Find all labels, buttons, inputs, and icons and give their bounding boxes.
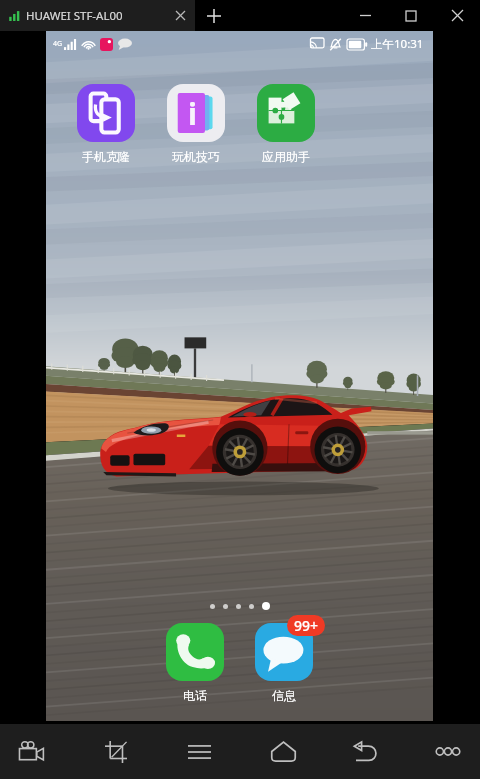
button[interactable]: Back xyxy=(340,724,392,779)
staticText: 玩机技巧 xyxy=(172,149,220,164)
button[interactable]: Close window xyxy=(434,0,480,31)
button[interactable]: New tab xyxy=(195,0,233,31)
button[interactable]: Close tab xyxy=(165,0,195,31)
button[interactable]: HUAWEI STF-AL00 xyxy=(0,0,195,31)
button[interactable]: More options xyxy=(422,724,474,779)
staticText: 应用助手 xyxy=(262,149,310,164)
staticText: 信息 xyxy=(272,688,296,703)
button[interactable]: Record video xyxy=(5,724,57,779)
staticText: 手机克隆 xyxy=(82,149,130,164)
button[interactable]: 99+ xyxy=(255,623,313,703)
button[interactable]: i xyxy=(167,84,225,164)
staticText: 4G xyxy=(53,39,63,49)
button[interactable]: Crop screenshot xyxy=(90,724,142,779)
button[interactable]: 电话 xyxy=(166,623,224,703)
button[interactable]: 手机克隆 xyxy=(77,84,135,164)
staticText: 99+ xyxy=(294,616,319,635)
staticText: 上午10:31 xyxy=(371,36,424,52)
button[interactable]: 应用助手 xyxy=(257,84,315,164)
button[interactable]: Maximize xyxy=(388,0,434,31)
button[interactable]: Home xyxy=(257,724,309,779)
staticText: i xyxy=(188,93,197,134)
button[interactable]: Recent apps xyxy=(173,724,225,779)
staticText: HUAWEI STF-AL00 xyxy=(26,8,123,24)
staticText: 电话 xyxy=(183,688,207,703)
button[interactable]: Minimize xyxy=(342,0,388,31)
